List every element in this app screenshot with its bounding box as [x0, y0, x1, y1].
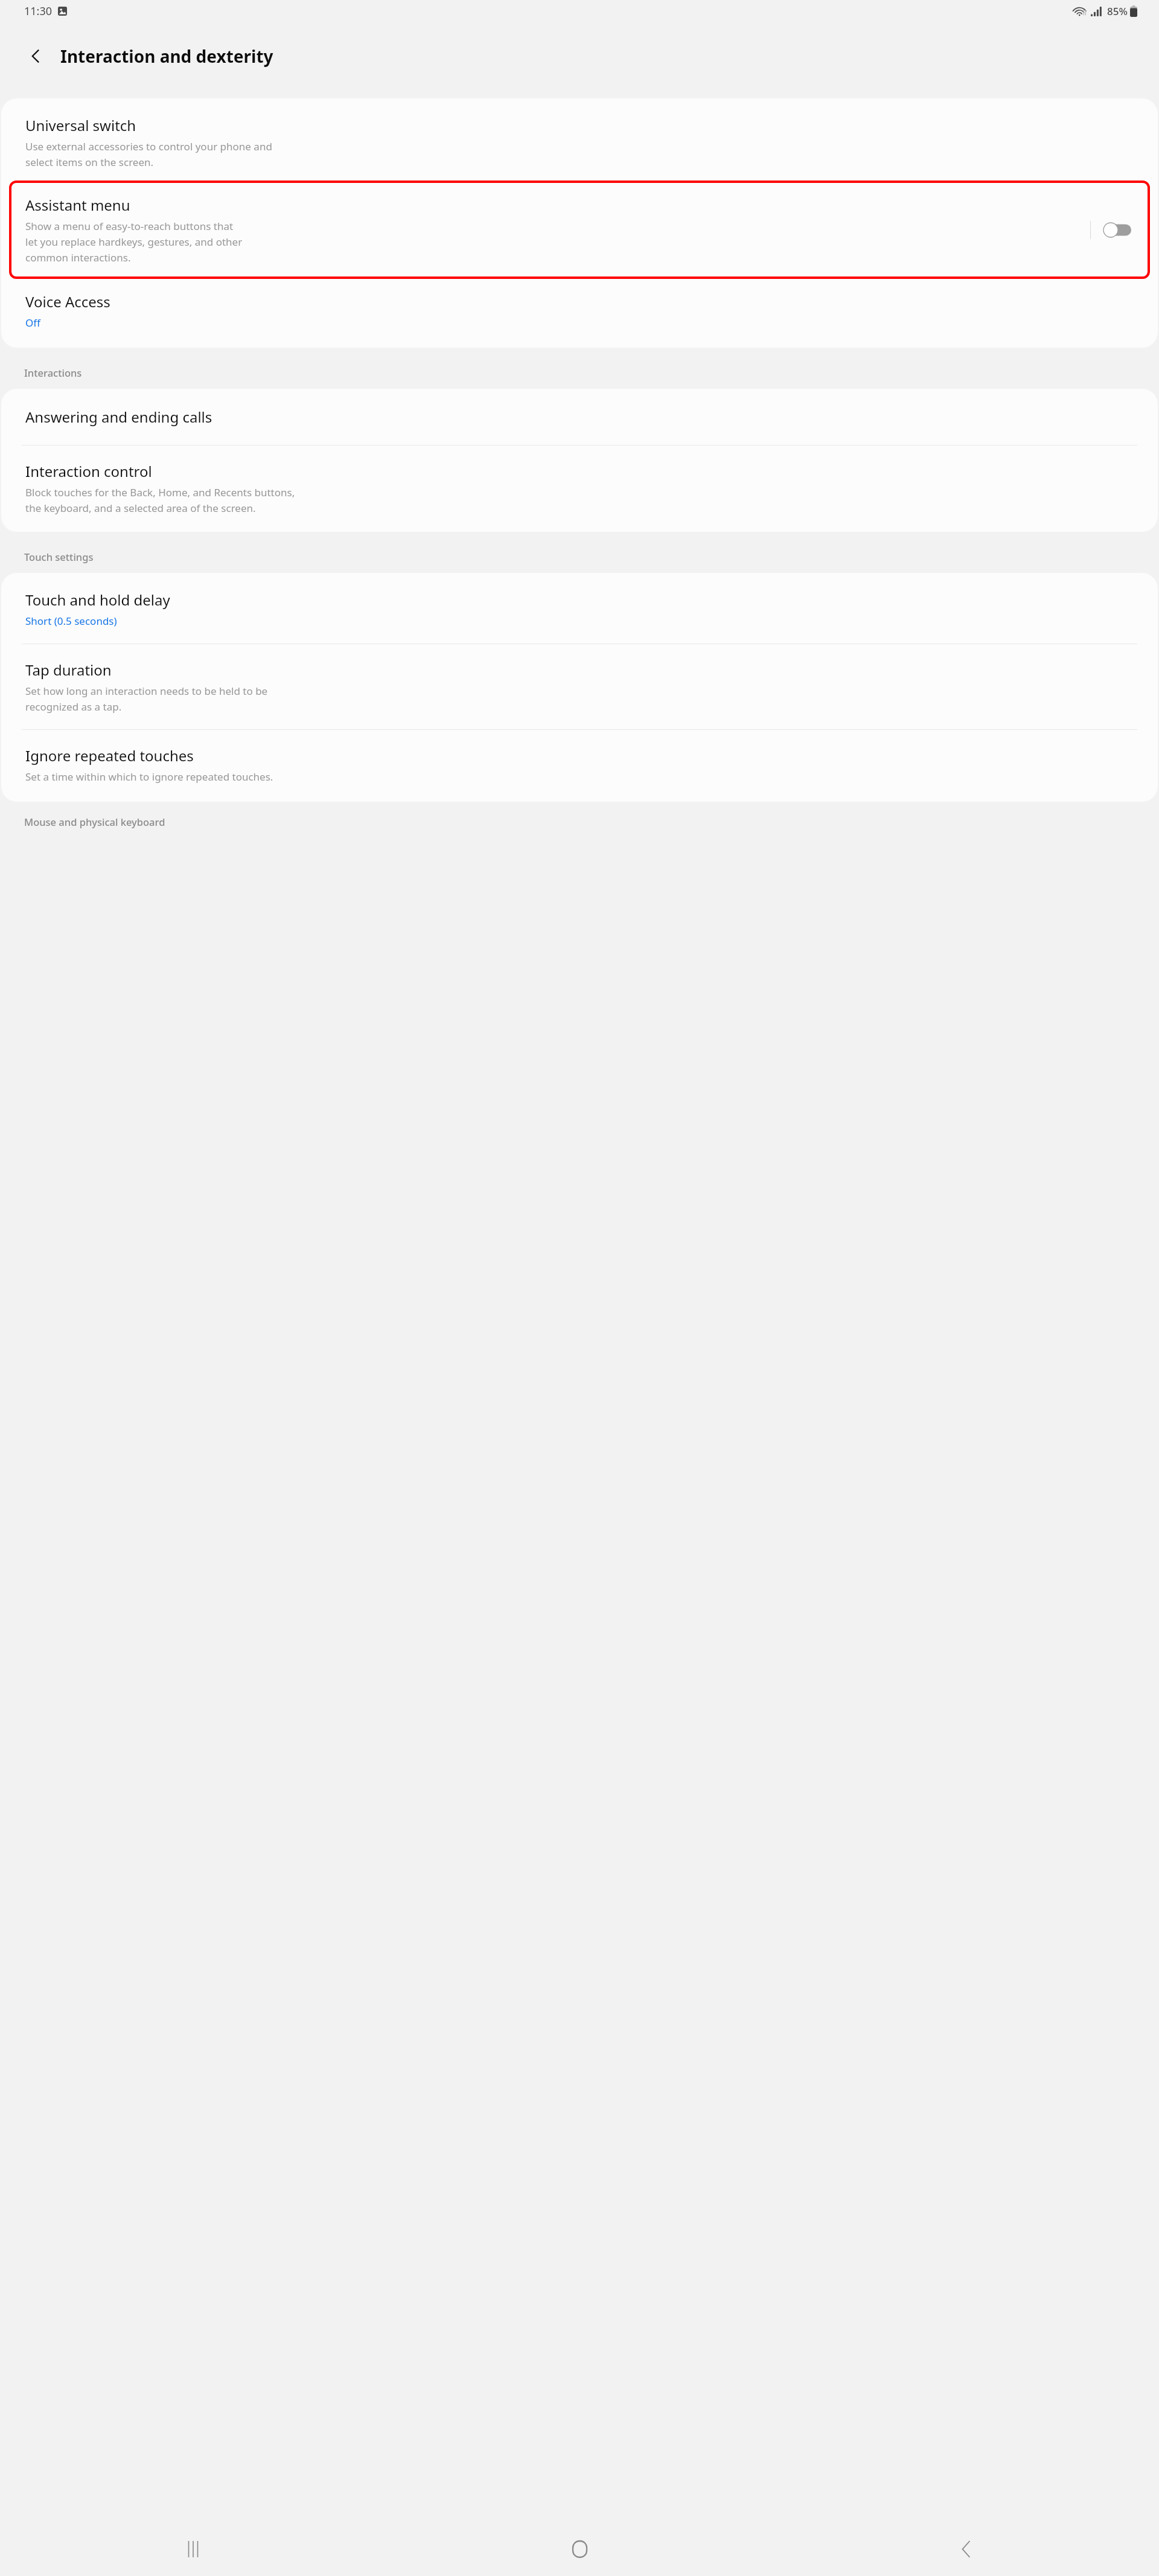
staticText: Touch settings	[24, 550, 94, 563]
staticText: Answering and ending calls	[25, 407, 212, 427]
staticText: Set how long an interaction needs to be …	[25, 684, 268, 714]
button[interactable]: Back	[773, 2522, 1159, 2576]
staticText: Show a menu of easy-to-reach buttons tha…	[25, 219, 243, 264]
staticText: 85%	[1107, 4, 1128, 18]
button[interactable]: Universal switch	[1, 98, 1158, 180]
button[interactable]: Touch and hold delay	[1, 573, 1158, 644]
button[interactable]: Home	[386, 2522, 773, 2576]
staticText: Voice Access	[25, 292, 110, 312]
staticText: Tap duration	[25, 660, 112, 680]
button[interactable]: Answering and ending calls	[1, 389, 1158, 445]
staticText: Use external accessories to control your…	[25, 139, 272, 169]
staticText: Off	[25, 316, 40, 330]
staticText: Block touches for the Back, Home, and Re…	[25, 485, 295, 515]
staticText: Short (0.5 seconds)	[25, 614, 117, 628]
staticText: Interaction control	[25, 461, 152, 481]
staticText: Set a time within which to ignore repeat…	[25, 770, 273, 784]
staticText: Interactions	[24, 366, 82, 379]
staticText: Touch and hold delay	[25, 590, 170, 610]
button[interactable]: Recents	[0, 2522, 386, 2576]
button[interactable]: Ignore repeated touches	[1, 730, 1158, 802]
button[interactable]: Back	[21, 40, 52, 72]
staticText: 11:30	[24, 4, 53, 19]
button[interactable]: Assistant menu toggle, off	[1101, 220, 1134, 240]
staticText: Ignore repeated touches	[25, 746, 194, 765]
staticText: Interaction and dexterity	[60, 45, 273, 68]
button[interactable]: Assistant menu	[10, 182, 1149, 278]
staticText: Universal switch	[25, 115, 136, 135]
staticText: Mouse and physical keyboard	[24, 815, 165, 828]
button[interactable]: Voice Access	[1, 280, 1158, 348]
button[interactable]: Tap duration	[1, 644, 1158, 729]
staticText: Assistant menu	[25, 195, 130, 215]
button[interactable]: Interaction control	[1, 446, 1158, 532]
